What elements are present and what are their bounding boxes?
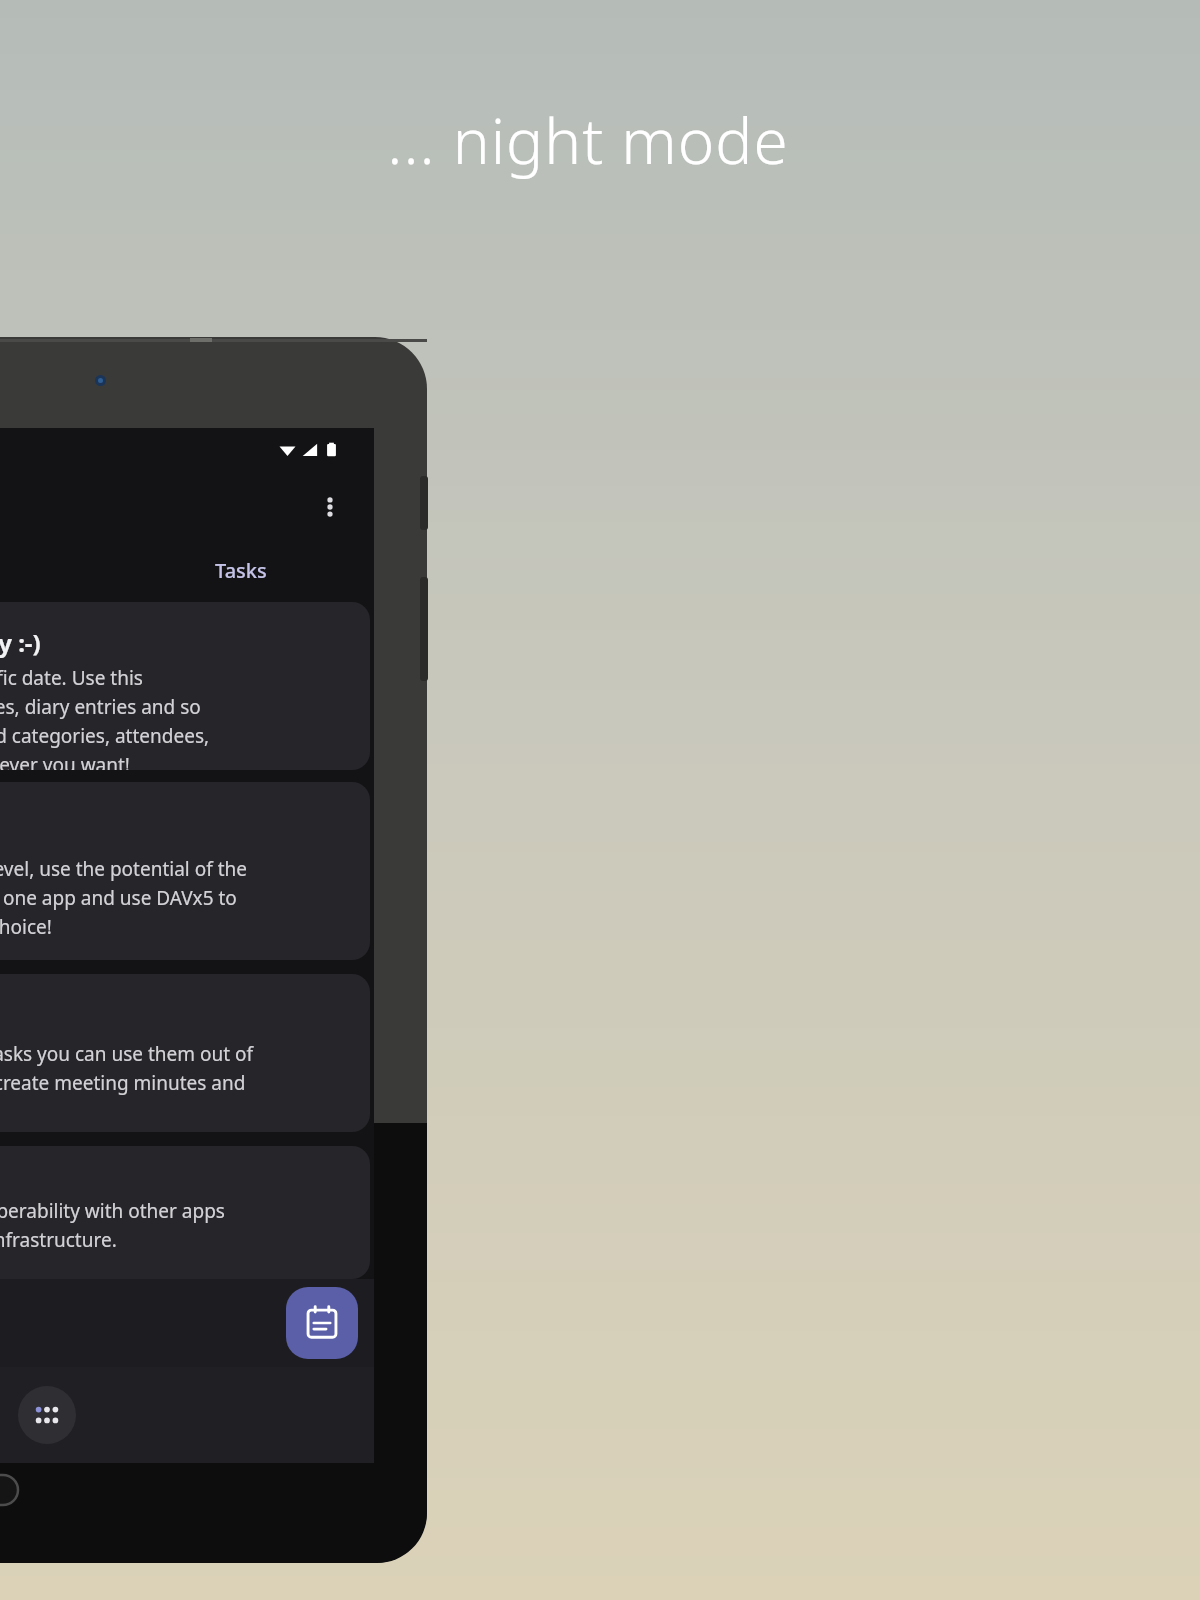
staticText: the box with each other, e.g. create mee… <box>0 1070 246 1096</box>
staticText: journals, notes & tasks out of one app a… <box>0 885 237 911</box>
staticText: ... night mode <box>387 98 789 182</box>
staticText: and a federated provider or infrastructu… <box>0 1227 117 1253</box>
button[interactable]: …for compatibility and interoperability … <box>0 1146 370 1279</box>
staticText: …for compatibility and interoperability … <box>0 1198 225 1224</box>
staticText: for protocols, meeting minutes, diary en… <box>0 694 201 720</box>
button[interactable]: More options <box>306 483 354 531</box>
button[interactable]: …& tasks <box>0 974 370 1132</box>
staticText: Take your board to the next level, use t… <box>0 856 247 882</box>
button[interactable]: Tasks <box>87 544 374 596</box>
button[interactable]: Add journal entry <box>286 1287 358 1359</box>
staticText: Tasks <box>215 557 267 584</box>
staticText: Journals are notes for a specific date. … <box>0 665 143 691</box>
button[interactable]: Take your board to the next level, use t… <box>0 782 370 960</box>
staticText: Your first journal entry :-) <box>0 626 41 659</box>
staticText: sync with the server of your choice! <box>0 914 52 940</box>
button[interactable]: All apps <box>18 1386 76 1444</box>
staticText: Thanks to journals, notes & tasks you ca… <box>0 1041 254 1067</box>
staticText: on. Explore the options to add categorie… <box>0 723 210 749</box>
staticText: comments to this entry whenever you want… <box>0 752 130 770</box>
button[interactable]: Your first journal entry :-) <box>0 602 370 770</box>
